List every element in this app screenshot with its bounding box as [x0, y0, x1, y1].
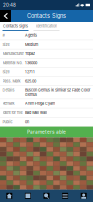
staticText: Bad Wall wall	[25, 110, 47, 115]
button[interactable]: Tab	[74, 190, 93, 202]
staticText: #	[2, 33, 4, 38]
button[interactable]: Tab	[0, 190, 19, 202]
staticText: Anim Froga Cyam	[25, 101, 55, 106]
button[interactable]: Tab	[19, 190, 37, 202]
button[interactable]: Tab	[56, 190, 74, 202]
staticText: Buscon Gemus ik Similar Sz Fade Color Ge…	[25, 88, 90, 97]
staticText: Material No.	[2, 61, 22, 65]
staticText: 136000	[25, 61, 37, 65]
staticText: Contacts Signs	[3, 24, 28, 28]
staticText: Ident for Tile	[2, 110, 22, 115]
button[interactable]: Contacts Signs	[0, 22, 31, 31]
staticText: 12711	[25, 70, 35, 74]
staticText: Remark	[2, 101, 14, 106]
staticText: Pass. Mark	[2, 79, 20, 83]
staticText: Identification	[36, 24, 57, 28]
staticText: on	[25, 119, 29, 124]
button[interactable]: Tab	[37, 190, 56, 202]
button[interactable]: Identification	[31, 22, 62, 31]
staticText: 625.00	[25, 79, 36, 83]
staticText: Contacts Signs	[27, 13, 66, 19]
staticText: Manufacturer	[2, 51, 23, 56]
staticText: Agents	[25, 33, 37, 38]
staticText: 20:48	[3, 2, 16, 8]
staticText: Details	[2, 88, 14, 92]
staticText: Parameters able	[27, 129, 66, 135]
staticText: Medium	[25, 42, 38, 47]
staticText: Topaz	[25, 51, 35, 56]
staticText: Size	[2, 70, 9, 74]
button[interactable]: Back	[0, 10, 11, 22]
staticText: Size	[2, 42, 9, 47]
button[interactable]: Parameters able	[0, 127, 93, 138]
staticText: Public	[2, 119, 12, 124]
